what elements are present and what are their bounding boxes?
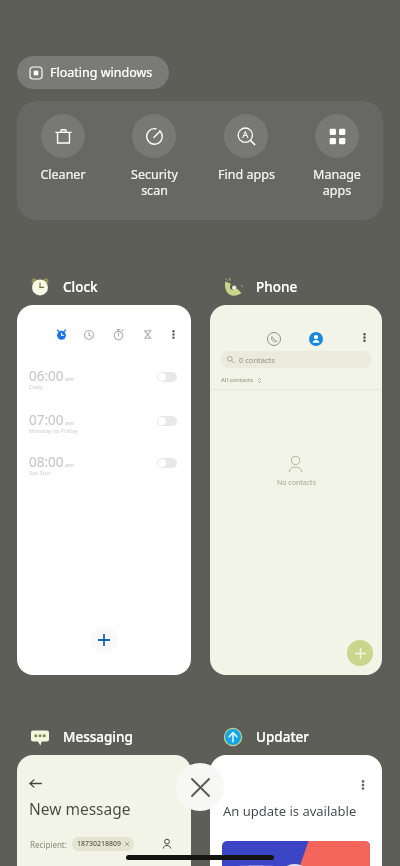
staticText: Floating windows	[50, 64, 153, 81]
staticText: 18730218809	[77, 839, 122, 849]
staticText: Messaging	[63, 728, 133, 746]
staticText: am	[65, 419, 74, 427]
button[interactable]: An update is available	[210, 755, 382, 866]
button[interactable]: Messaging	[17, 725, 133, 749]
staticText: Cleaner	[40, 166, 86, 183]
button[interactable]: Security scan	[108, 101, 200, 198]
staticText: Recipient:	[30, 839, 67, 850]
staticText: New message	[29, 798, 131, 819]
staticText: 06:00	[29, 367, 64, 385]
button[interactable]: Floating windows	[17, 56, 169, 89]
staticText: Find apps	[218, 166, 275, 183]
button[interactable]: Close all	[176, 763, 224, 811]
staticText: Daily	[29, 383, 43, 391]
staticText: Security scan	[131, 166, 178, 198]
button[interactable]: Find apps	[200, 101, 292, 183]
staticText: am	[65, 461, 74, 469]
staticText: 0 contacts	[239, 355, 275, 365]
button[interactable]: 06:00	[17, 305, 191, 675]
button[interactable]: Manage apps	[291, 101, 383, 198]
button[interactable]: Add contact	[347, 640, 373, 666]
staticText: 07:00	[29, 411, 64, 429]
button[interactable]: Updater	[210, 725, 310, 749]
staticText: Phone	[256, 278, 298, 296]
button[interactable]: Contacts	[309, 332, 323, 346]
button[interactable]: All contacts	[221, 376, 262, 384]
staticText: Sat Sun	[29, 469, 51, 477]
button[interactable]: Toggle alarm	[157, 372, 177, 382]
button[interactable]: 0 contacts	[220, 351, 372, 368]
button[interactable]: 08:00	[17, 453, 191, 487]
staticText: An update is available	[223, 802, 357, 820]
button[interactable]: 06:00	[17, 367, 191, 401]
staticText: Monday to Friday	[29, 427, 79, 435]
button[interactable]: Contacts	[210, 305, 382, 675]
staticText: Manage apps	[313, 166, 361, 198]
button[interactable]: Phone	[210, 275, 298, 299]
button[interactable]: Cleaner	[17, 101, 109, 183]
staticText: All contacts	[221, 376, 254, 384]
button[interactable]: Toggle alarm	[157, 416, 177, 426]
button[interactable]: Add alarm	[90, 626, 118, 654]
staticText: No contacts	[277, 478, 316, 488]
staticText: 08:00	[29, 453, 64, 471]
button[interactable]: Clock	[17, 275, 98, 299]
staticText: am	[65, 375, 74, 383]
button[interactable]: Toggle alarm	[157, 458, 177, 468]
staticText: Clock	[63, 278, 98, 296]
staticText: Updater	[256, 728, 310, 746]
button[interactable]: 07:00	[17, 411, 191, 445]
button[interactable]: New message	[17, 755, 191, 866]
